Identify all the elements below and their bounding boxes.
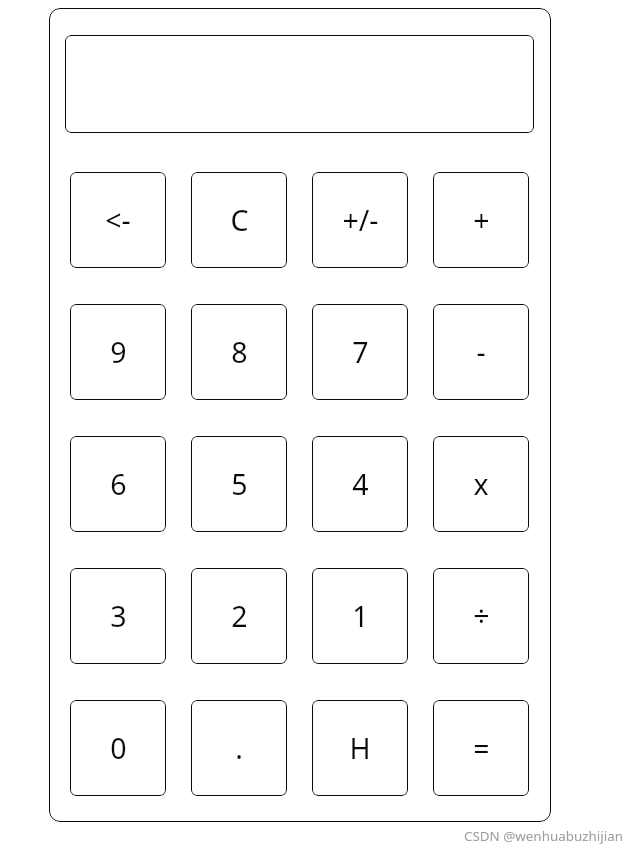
button[interactable]: Minus [433,304,529,400]
staticText: 0 [110,729,127,768]
staticText: 1 [352,597,369,636]
button[interactable]: Decimal point [191,700,287,796]
button[interactable]: Eight [191,304,287,400]
button[interactable]: Backspace [70,172,166,268]
button[interactable]: Equals [433,700,529,796]
staticText: . [235,729,243,768]
staticText: H [349,729,371,768]
staticText: x [473,465,489,504]
staticText: ÷ [473,597,490,636]
staticText: - [476,333,486,372]
button[interactable]: Toggle sign [312,172,408,268]
staticText: C [230,201,249,240]
button[interactable]: Plus [433,172,529,268]
button[interactable]: Multiply [433,436,529,532]
button[interactable]: Nine [70,304,166,400]
staticText: CSDN @wenhuabuzhijian [464,827,623,845]
button[interactable]: One [312,568,408,664]
button[interactable]: Two [191,568,287,664]
staticText: 4 [352,465,369,504]
button[interactable]: Zero [70,700,166,796]
staticText: 5 [231,465,248,504]
button[interactable]: Divide [433,568,529,664]
staticText: 9 [110,333,127,372]
staticText: 2 [231,597,248,636]
staticText: 7 [352,333,369,372]
staticText: 3 [110,597,127,636]
button[interactable]: Three [70,568,166,664]
button[interactable]: Clear [191,172,287,268]
staticText: 8 [231,333,248,372]
staticText: 6 [110,465,127,504]
button[interactable]: Five [191,436,287,532]
button[interactable]: History [312,700,408,796]
other: Result display [65,35,534,133]
button[interactable]: Seven [312,304,408,400]
staticText: + [473,201,490,240]
staticText: = [473,729,490,768]
staticText: +/- [342,201,379,240]
button[interactable]: Four [312,436,408,532]
button[interactable]: Six [70,436,166,532]
staticText: <- [105,201,131,240]
